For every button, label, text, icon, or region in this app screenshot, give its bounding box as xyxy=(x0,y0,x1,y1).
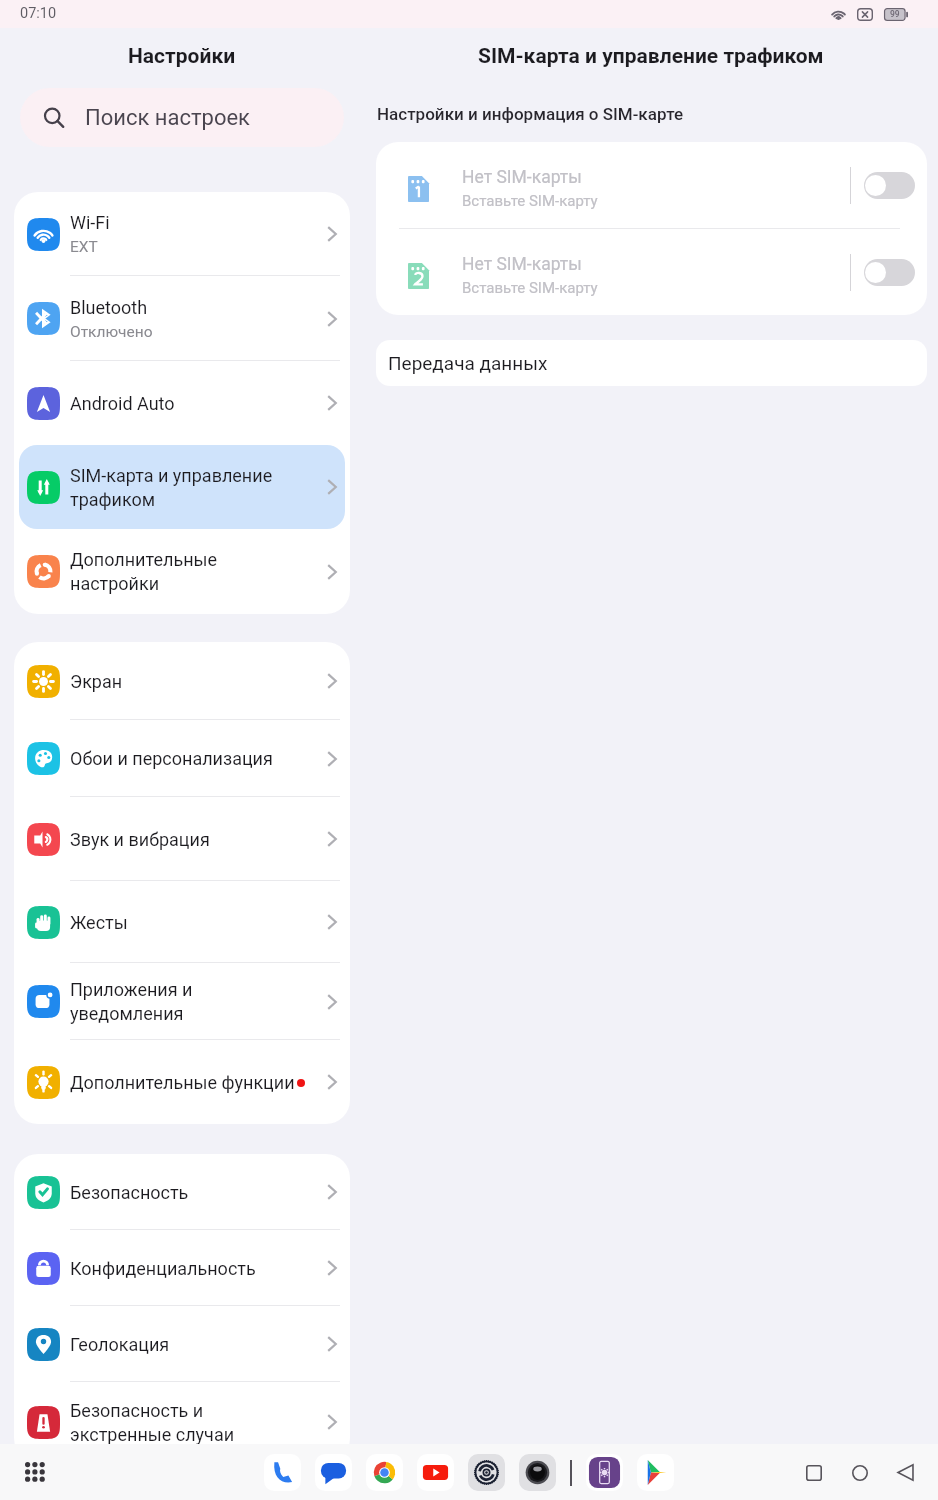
staticText: Bluetooth xyxy=(70,297,148,318)
button[interactable]: SIM-карта и управление трафиком xyxy=(19,445,345,529)
staticText: Экран xyxy=(70,671,123,692)
button[interactable]: Home xyxy=(844,1457,875,1488)
button[interactable]: Device care xyxy=(586,1454,623,1491)
button[interactable]: Camera xyxy=(519,1454,556,1491)
staticText: Безопасность и экстренные случаи xyxy=(70,1400,303,1445)
button[interactable]: Chrome xyxy=(366,1454,403,1491)
staticText: Нет SIM-карты xyxy=(462,254,582,275)
button[interactable]: Settings xyxy=(468,1454,505,1491)
button[interactable]: SIM 1 toggle xyxy=(864,172,915,199)
button[interactable]: All apps xyxy=(17,1454,53,1490)
staticText: Поиск настроек xyxy=(85,105,251,131)
staticText: Звук и вибрация xyxy=(70,829,210,850)
staticText: Настройки xyxy=(128,44,236,69)
button[interactable]: Жесты xyxy=(19,881,345,963)
button[interactable]: Обои и персонализация xyxy=(19,720,345,797)
staticText: Безопасность xyxy=(70,1182,189,1203)
staticText: Вставьте SIM-карту xyxy=(462,279,598,297)
button[interactable]: Экран xyxy=(19,642,345,720)
button[interactable]: Безопасность и экстренные случаи xyxy=(19,1382,345,1462)
button[interactable]: Конфиденциальность xyxy=(19,1230,345,1306)
button[interactable]: SIM 2 toggle xyxy=(864,259,915,286)
button[interactable]: YouTube xyxy=(417,1454,454,1491)
staticText: Дополнительные функции xyxy=(70,1072,295,1093)
button[interactable]: Play Store xyxy=(637,1454,674,1491)
staticText: Геолокация xyxy=(70,1334,170,1355)
staticText: Приложения и уведомления xyxy=(70,979,303,1024)
staticText: Wi-Fi xyxy=(70,212,110,233)
button[interactable]: Back xyxy=(890,1457,921,1488)
button[interactable]: Нет SIM-карты xyxy=(376,229,927,315)
button[interactable]: Нет SIM-карты xyxy=(376,142,927,228)
staticText: EXT xyxy=(70,238,98,256)
staticText: SIM-карта и управление трафиком xyxy=(478,44,824,69)
staticText: Дополнительные настройки xyxy=(70,549,303,594)
staticText: Вставьте SIM-карту xyxy=(462,192,598,210)
button[interactable]: Wi-Fi xyxy=(19,192,345,276)
button[interactable]: Дополнительные функции xyxy=(19,1040,345,1124)
button[interactable]: Приложения и уведомления xyxy=(19,963,345,1040)
button[interactable]: Передача данных xyxy=(376,340,927,386)
button[interactable]: Поиск настроек xyxy=(20,88,344,147)
staticText: Конфиденциальность xyxy=(70,1258,256,1279)
staticText: 07:10 xyxy=(20,5,57,22)
staticText: 99 xyxy=(890,9,900,19)
staticText: Android Auto xyxy=(70,393,175,414)
button[interactable]: Messages xyxy=(315,1454,352,1491)
staticText: Жесты xyxy=(70,912,128,933)
button[interactable]: Phone xyxy=(264,1454,301,1491)
staticText: Обои и персонализация xyxy=(70,748,273,769)
staticText: Настройки и информация о SIM-карте xyxy=(377,104,684,124)
button[interactable]: Bluetooth xyxy=(19,276,345,361)
button[interactable]: Безопасность xyxy=(19,1154,345,1230)
staticText: Нет SIM-карты xyxy=(462,167,582,188)
staticText: Передача данных xyxy=(388,352,548,374)
button[interactable]: Recents xyxy=(798,1457,829,1488)
button[interactable]: Звук и вибрация xyxy=(19,797,345,881)
staticText: SIM-карта и управление трафиком xyxy=(70,465,303,510)
staticText: Отключено xyxy=(70,323,153,341)
button[interactable]: Геолокация xyxy=(19,1306,345,1382)
button[interactable]: Android Auto xyxy=(19,361,345,445)
button[interactable]: Дополнительные настройки xyxy=(19,529,345,614)
